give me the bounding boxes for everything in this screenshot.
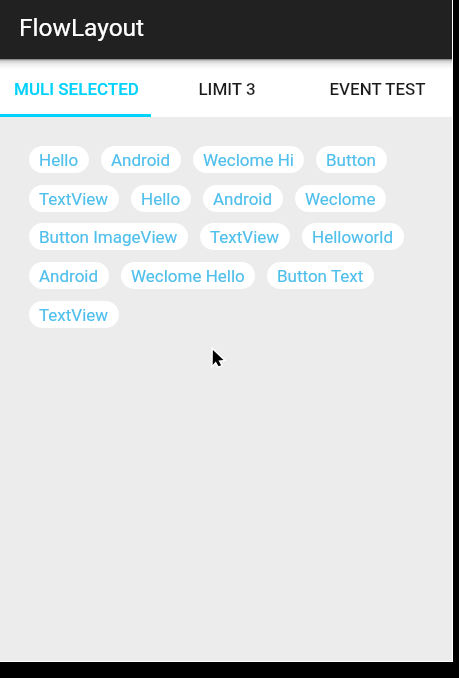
button[interactable]: TextView [29,185,119,212]
button[interactable]: TextView [200,223,290,250]
button[interactable]: Hello [29,146,89,173]
staticText: Android [213,189,273,209]
staticText: MULI SELECTED [14,79,139,99]
staticText: Hello [39,150,79,170]
staticText: Android [111,150,171,170]
staticText: Android [39,266,99,286]
staticText: Hello [141,189,181,209]
button[interactable]: TextView [29,301,119,328]
button[interactable]: MULI SELECTED [0,59,150,117]
button[interactable]: Android [203,185,283,212]
button[interactable]: Weclome Hello [121,262,255,289]
staticText: Weclome Hi [203,150,294,170]
button[interactable]: FlowLayout [0,0,452,59]
button[interactable]: Button [316,146,387,173]
button[interactable]: Android [101,146,181,173]
staticText: EVENT TEST [329,79,426,99]
button[interactable]: EVENT TEST [301,59,452,117]
staticText: Helloworld [312,227,394,247]
button[interactable]: Weclome Hi [193,146,304,173]
button[interactable]: Hello [131,185,191,212]
staticText: TextView [39,305,109,325]
staticText: Button [326,150,377,170]
button[interactable]: Button Text [267,262,374,289]
button[interactable]: Android [29,262,109,289]
staticText: Button Text [277,266,364,286]
staticText: LIMIT 3 [198,79,256,99]
staticText: TextView [39,189,109,209]
button[interactable]: Helloworld [302,223,404,250]
button[interactable]: Weclome [295,185,386,212]
staticText: FlowLayout [19,13,145,42]
button[interactable]: LIMIT 3 [150,59,301,117]
staticText: Weclome Hello [131,266,245,286]
staticText: TextView [210,227,280,247]
button[interactable]: Button ImageView [29,223,188,250]
staticText: Weclome [305,189,376,209]
staticText: Button ImageView [39,227,178,247]
